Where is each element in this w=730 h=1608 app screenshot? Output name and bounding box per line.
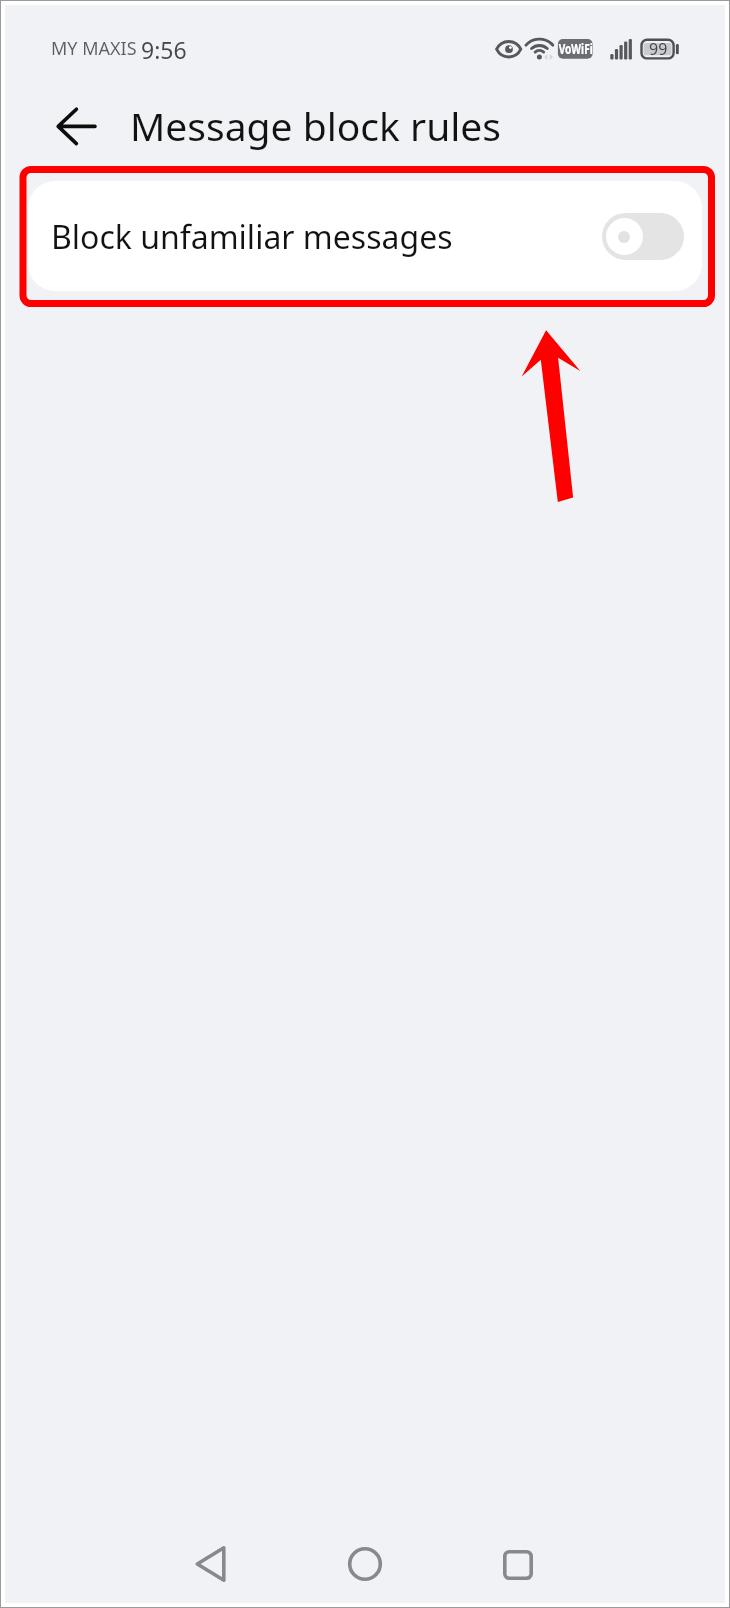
staticText: MY MAXIS [51,36,137,61]
button[interactable]: Home [315,1514,415,1608]
staticText: Message block rules [130,99,502,152]
button[interactable]: Block unfamiliar messages toggle [602,213,684,260]
staticText: VoWiFi [559,39,593,58]
button[interactable]: Back [50,99,106,155]
staticText: Block unfamiliar messages [51,215,453,259]
staticText: 9:56 [141,34,187,62]
button[interactable]: Block unfamiliar messages [28,181,702,291]
button[interactable]: Recent apps [468,1515,568,1608]
staticText: 99 [649,38,668,59]
button[interactable]: Back [161,1514,261,1608]
